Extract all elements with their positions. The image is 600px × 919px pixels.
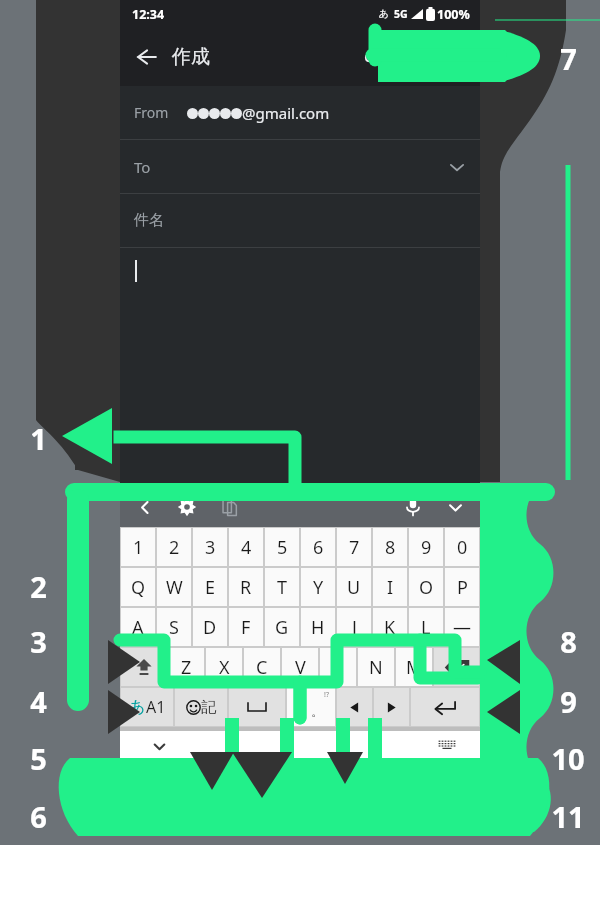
staticText: 、。 — [298, 703, 324, 719]
button[interactable]: J — [337, 608, 371, 646]
staticText: L — [421, 615, 431, 640]
staticText: U — [347, 575, 361, 600]
staticText: D — [203, 615, 217, 640]
button[interactable]: From — [120, 86, 480, 139]
staticText: B — [332, 655, 344, 680]
button[interactable]: Z — [168, 648, 204, 686]
button[interactable]: キーボードを閉じる — [434, 487, 476, 527]
staticText: 7 — [560, 39, 577, 75]
button[interactable]: 件名 — [120, 194, 480, 247]
staticText: R — [240, 575, 252, 600]
button[interactable]: Y — [301, 568, 335, 606]
button[interactable]: K — [373, 608, 407, 646]
staticText: J — [352, 615, 357, 640]
button[interactable]: 7 — [337, 528, 371, 566]
staticText: 5 — [277, 535, 288, 560]
button[interactable]: キーボードを隠す — [414, 731, 480, 761]
staticText: Y — [313, 575, 324, 600]
button[interactable]: シフト — [121, 648, 166, 686]
staticText: M — [406, 655, 423, 680]
button[interactable]: 設定 — [166, 487, 208, 527]
button[interactable]: E — [193, 568, 227, 606]
staticText: 9 — [421, 535, 432, 560]
button[interactable]: M — [396, 648, 432, 686]
button[interactable]: 2 — [157, 528, 191, 566]
button[interactable]: 9 — [409, 528, 443, 566]
button[interactable]: F — [229, 608, 263, 646]
button[interactable]: B — [320, 648, 356, 686]
button[interactable]: To — [120, 140, 480, 193]
button[interactable]: X — [206, 648, 242, 686]
staticText: N — [369, 655, 383, 680]
button[interactable]: H — [301, 608, 335, 646]
staticText: K — [384, 615, 396, 640]
staticText: A1 — [146, 696, 166, 718]
button[interactable]: クリップボード — [208, 487, 250, 527]
button[interactable]: 1 — [121, 528, 155, 566]
button[interactable]: 0 — [445, 528, 479, 566]
button[interactable]: 前の候補 — [124, 487, 166, 527]
staticText: 9 — [560, 682, 577, 718]
button[interactable]: Q — [121, 568, 155, 606]
button[interactable]: I — [373, 568, 407, 606]
button[interactable]: 音声入力 — [392, 487, 434, 527]
button[interactable]: キーボードを閉じる — [120, 731, 198, 761]
staticText: あ — [129, 697, 146, 717]
button[interactable] — [120, 248, 480, 487]
button[interactable]: S — [157, 608, 191, 646]
button[interactable]: 戻る — [120, 31, 172, 83]
staticText: Z — [181, 655, 192, 680]
staticText: I — [387, 575, 394, 600]
staticText: Q — [131, 575, 146, 600]
button[interactable]: O — [409, 568, 443, 606]
button[interactable]: 確定 — [411, 688, 479, 726]
staticText: 8 — [385, 535, 396, 560]
button[interactable]: 句読点 — [287, 688, 335, 726]
staticText: X — [219, 655, 230, 680]
button[interactable]: 入力モード切替 — [121, 688, 173, 726]
staticText: 2 — [30, 567, 47, 603]
staticText: E — [205, 575, 216, 600]
staticText: C — [256, 655, 268, 680]
button[interactable]: 3 — [193, 528, 227, 566]
staticText: 8 — [560, 622, 577, 658]
button[interactable]: R — [229, 568, 263, 606]
button[interactable]: A — [121, 608, 155, 646]
staticText: 12:34 — [132, 6, 165, 23]
staticText: 10 — [551, 739, 585, 775]
button[interactable]: L — [409, 608, 443, 646]
button[interactable]: U — [337, 568, 371, 606]
button[interactable]: W — [157, 568, 191, 606]
staticText: 2 — [169, 535, 180, 560]
button[interactable]: 8 — [373, 528, 407, 566]
button[interactable]: — — [445, 608, 479, 646]
button[interactable]: D — [193, 608, 227, 646]
button[interactable]: V — [282, 648, 318, 686]
button[interactable]: 左へ — [337, 688, 372, 726]
button[interactable]: G — [265, 608, 299, 646]
button[interactable]: スペース — [229, 688, 285, 726]
button[interactable]: T — [265, 568, 299, 606]
button[interactable]: 6 — [301, 528, 335, 566]
staticText: From — [134, 103, 169, 122]
staticText: — — [453, 615, 471, 640]
staticText: 5G — [394, 7, 408, 21]
staticText: G — [275, 615, 289, 640]
button[interactable]: 4 — [229, 528, 263, 566]
button[interactable]: C — [244, 648, 280, 686]
button[interactable]: N — [358, 648, 394, 686]
button[interactable]: 絵文字・記号 — [175, 688, 227, 726]
staticText: A — [132, 615, 144, 640]
staticText: P — [457, 575, 468, 600]
button[interactable]: 5 — [265, 528, 299, 566]
staticText: S — [169, 615, 179, 640]
staticText: W — [166, 575, 183, 600]
button[interactable]: 添付ファイル — [352, 35, 396, 79]
staticText: 6 — [313, 535, 324, 560]
button[interactable]: 右へ — [374, 688, 409, 726]
button[interactable]: P — [445, 568, 479, 606]
staticText: H — [311, 615, 325, 640]
button[interactable]: 削除 — [434, 648, 479, 686]
